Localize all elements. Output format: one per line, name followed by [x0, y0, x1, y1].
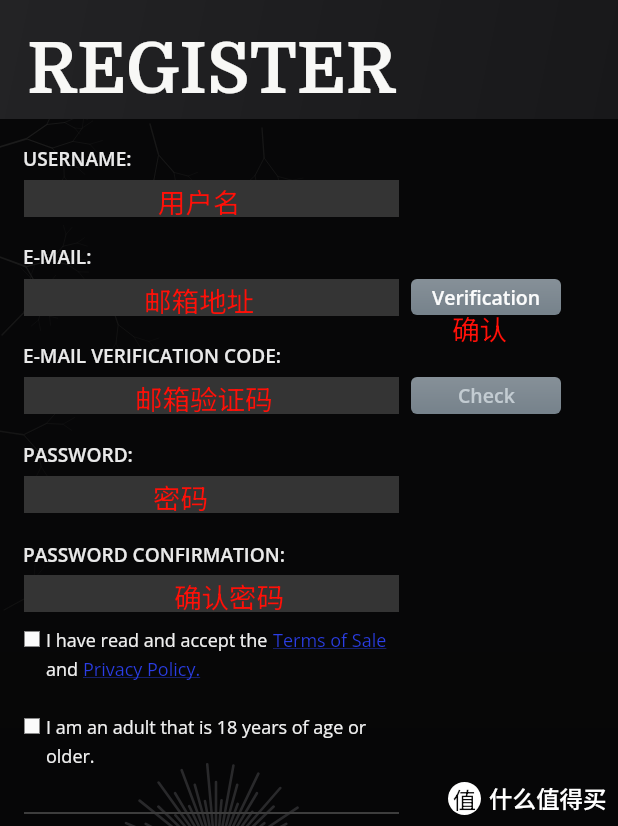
staticText: 值: [453, 782, 476, 815]
staticText: Verification: [432, 284, 541, 311]
staticText: PASSWORD CONFIRMATION:: [23, 542, 285, 568]
button[interactable]: [24, 476, 399, 513]
staticText: E-MAIL VERIFICATION CODE:: [23, 343, 282, 369]
button[interactable]: [24, 279, 399, 316]
button[interactable]: [24, 180, 399, 217]
staticText: I am an adult that is 18 years of age or: [46, 715, 367, 740]
staticText: REGISTER: [27, 30, 397, 110]
staticText: 邮箱地址: [144, 280, 254, 320]
button[interactable]: Checkbox: [24, 628, 387, 682]
button[interactable]: Verification: [411, 279, 561, 315]
staticText: 密码: [153, 477, 208, 517]
staticText: I have read and accept the: [46, 628, 273, 653]
button[interactable]: [24, 377, 399, 414]
staticText: E-MAIL:: [23, 244, 92, 270]
staticText: 确认密码: [174, 576, 284, 616]
staticText: Privacy Policy.: [83, 657, 201, 682]
staticText: 用户名: [158, 181, 241, 221]
staticText: PASSWORD:: [23, 442, 133, 468]
button[interactable]: Check: [411, 377, 561, 414]
staticText: older.: [46, 744, 95, 769]
staticText: and: [46, 657, 83, 682]
staticText: 邮箱验证码: [135, 378, 273, 418]
button[interactable]: Checkbox: [24, 715, 367, 769]
staticText: USERNAME:: [23, 146, 132, 172]
staticText: 确认: [452, 308, 507, 348]
button[interactable]: [24, 575, 399, 612]
staticText: 什么值得买: [489, 781, 607, 815]
staticText: Check: [458, 382, 515, 409]
staticText: Terms of Sale: [273, 628, 387, 653]
